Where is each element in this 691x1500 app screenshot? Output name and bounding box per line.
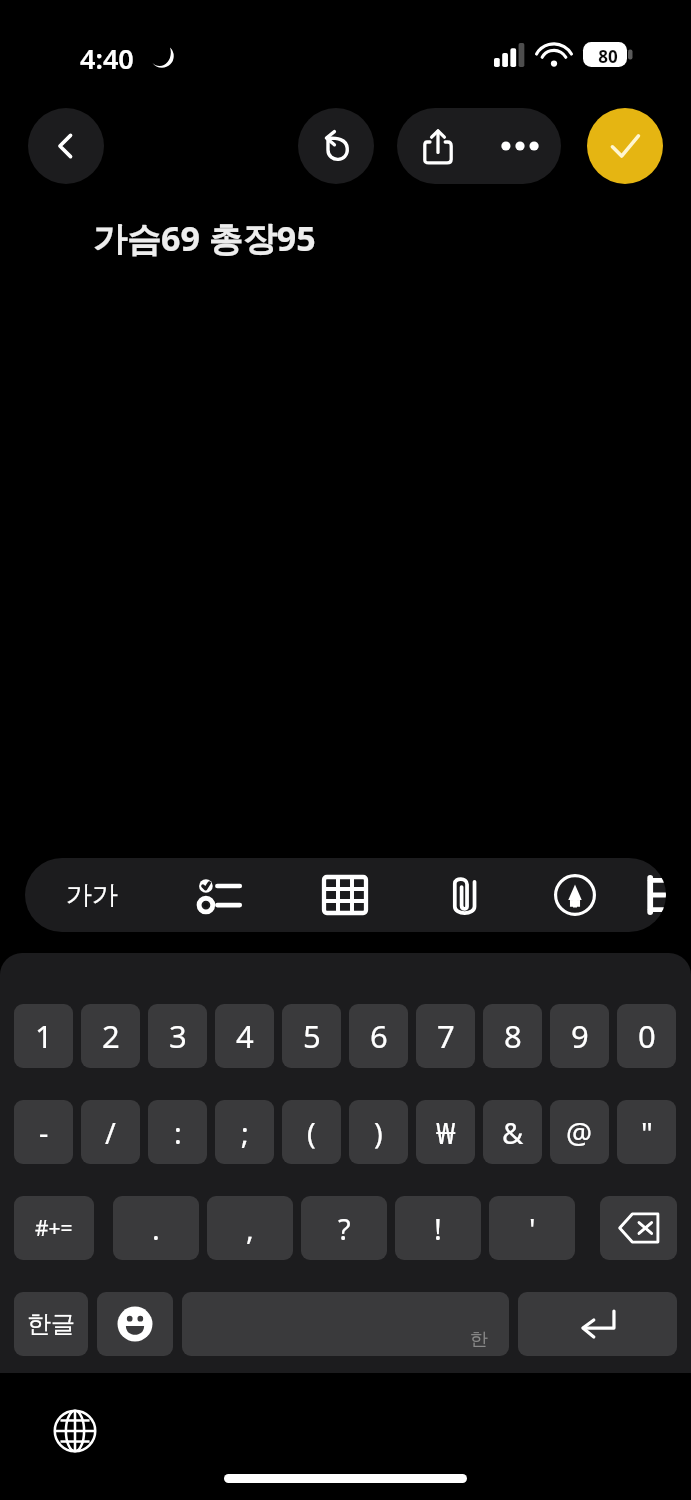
button[interactable]: Markup bbox=[520, 858, 630, 932]
button[interactable]: 8 bbox=[483, 1004, 542, 1068]
button[interactable]: Change keyboard language bbox=[44, 1400, 106, 1462]
button[interactable]: : bbox=[148, 1100, 207, 1164]
staticText: & bbox=[502, 1113, 524, 1152]
button[interactable]: Attach bbox=[410, 858, 520, 932]
button[interactable]: 1 bbox=[14, 1004, 73, 1068]
button[interactable]: / bbox=[81, 1100, 140, 1164]
button[interactable]: 한글 bbox=[14, 1292, 88, 1356]
staticText: 한글 bbox=[27, 1309, 75, 1339]
button[interactable]: 6 bbox=[349, 1004, 408, 1068]
button[interactable]: Checklist bbox=[165, 858, 275, 932]
staticText: . bbox=[152, 1209, 160, 1248]
button[interactable]: 4 bbox=[215, 1004, 274, 1068]
button[interactable]: ; bbox=[215, 1100, 274, 1164]
staticText: 80 bbox=[589, 45, 627, 68]
button[interactable]: Table bbox=[290, 858, 400, 932]
button[interactable]: 5 bbox=[282, 1004, 341, 1068]
button[interactable]: . bbox=[113, 1196, 199, 1260]
button[interactable]: #+= bbox=[14, 1196, 94, 1260]
button[interactable]: More formatting bbox=[643, 858, 666, 932]
staticText: ; bbox=[241, 1113, 249, 1152]
staticText: " bbox=[641, 1113, 653, 1152]
staticText: ( bbox=[307, 1113, 316, 1152]
staticText: ₩ bbox=[436, 1113, 456, 1152]
staticText: 1 bbox=[35, 1015, 53, 1057]
button[interactable]: 3 bbox=[148, 1004, 207, 1068]
staticText: 2 bbox=[102, 1015, 120, 1057]
staticText: ! bbox=[434, 1209, 442, 1248]
button[interactable]: ( bbox=[282, 1100, 341, 1164]
button[interactable]: 가가 bbox=[37, 858, 147, 932]
staticText: ? bbox=[338, 1209, 351, 1248]
button[interactable]: ! bbox=[395, 1196, 481, 1260]
staticText: 9 bbox=[571, 1015, 589, 1057]
button[interactable]: & bbox=[483, 1100, 542, 1164]
staticText: 가슴69 총장95 bbox=[93, 215, 316, 261]
button[interactable]: Emoji bbox=[97, 1292, 173, 1356]
button[interactable]: Back bbox=[28, 108, 104, 184]
staticText: 가가 bbox=[66, 879, 118, 912]
button[interactable]: ) bbox=[349, 1100, 408, 1164]
button[interactable]: - bbox=[14, 1100, 73, 1164]
button[interactable]: 2 bbox=[81, 1004, 140, 1068]
button[interactable]: 7 bbox=[416, 1004, 475, 1068]
button[interactable]: , bbox=[207, 1196, 293, 1260]
staticText: ' bbox=[529, 1209, 536, 1248]
staticText: 3 bbox=[169, 1015, 187, 1057]
staticText: 7 bbox=[437, 1015, 455, 1057]
staticText: @ bbox=[566, 1113, 593, 1152]
button[interactable]: Backspace bbox=[600, 1196, 677, 1260]
staticText: #+= bbox=[35, 1214, 73, 1243]
staticText: : bbox=[174, 1113, 182, 1152]
staticText: 한 bbox=[470, 1328, 488, 1351]
button[interactable]: Enter bbox=[518, 1292, 677, 1356]
button[interactable]: Undo bbox=[298, 108, 374, 184]
button[interactable]: " bbox=[617, 1100, 676, 1164]
button[interactable]: ₩ bbox=[416, 1100, 475, 1164]
button[interactable]: ? bbox=[301, 1196, 387, 1260]
button[interactable]: @ bbox=[550, 1100, 609, 1164]
button[interactable]: Share bbox=[397, 108, 479, 184]
staticText: 5 bbox=[303, 1015, 321, 1057]
staticText: - bbox=[39, 1113, 49, 1152]
staticText: 8 bbox=[504, 1015, 522, 1057]
staticText: , bbox=[246, 1209, 254, 1248]
button[interactable]: Done bbox=[587, 108, 663, 184]
button[interactable]: More options bbox=[479, 108, 561, 184]
staticText: 4:40 bbox=[80, 40, 134, 77]
button[interactable]: Space bbox=[182, 1292, 509, 1356]
button[interactable]: 0 bbox=[617, 1004, 676, 1068]
staticText: 6 bbox=[370, 1015, 388, 1057]
button[interactable]: 9 bbox=[550, 1004, 609, 1068]
staticText: 0 bbox=[638, 1015, 656, 1057]
staticText: / bbox=[105, 1113, 116, 1152]
button[interactable]: ' bbox=[489, 1196, 575, 1260]
staticText: 4 bbox=[236, 1015, 254, 1057]
staticText: ) bbox=[374, 1113, 383, 1152]
